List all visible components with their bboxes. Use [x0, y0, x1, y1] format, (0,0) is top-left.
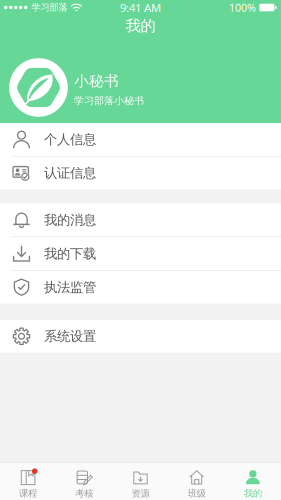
staticText: 考核	[75, 487, 93, 499]
staticText: 系统设置	[44, 328, 96, 345]
staticText: 班级	[188, 487, 206, 499]
staticText: 小秘书	[74, 72, 119, 90]
staticText: 我的	[244, 487, 262, 499]
staticText: 我的	[125, 16, 155, 36]
button[interactable]: 考核	[56, 463, 112, 500]
staticText: 个人信息	[44, 131, 96, 148]
button[interactable]: 系统设置	[0, 320, 281, 353]
button[interactable]: 我的下载	[0, 237, 281, 270]
staticText: 学习部落小秘书	[74, 94, 144, 107]
button[interactable]: 资源	[112, 463, 169, 500]
staticText: 执法监管	[44, 279, 96, 296]
staticText: 资源	[131, 487, 149, 499]
button[interactable]: 班级	[169, 463, 225, 500]
staticText: 100%	[229, 0, 256, 15]
button[interactable]: 个人信息	[0, 123, 281, 156]
staticText: 9:41 AM	[120, 0, 161, 15]
button[interactable]: 认证信息	[0, 157, 281, 190]
button[interactable]: 执法监管	[0, 271, 281, 304]
staticText: 课程	[19, 487, 37, 499]
button[interactable]: 课程	[0, 463, 56, 500]
staticText: 学习部落	[31, 2, 67, 13]
button[interactable]: 我的	[225, 463, 281, 500]
button[interactable]: 我的消息	[0, 204, 281, 237]
staticText: 我的下载	[44, 245, 96, 262]
staticText: 我的消息	[44, 212, 96, 228]
staticText: 认证信息	[44, 165, 96, 181]
